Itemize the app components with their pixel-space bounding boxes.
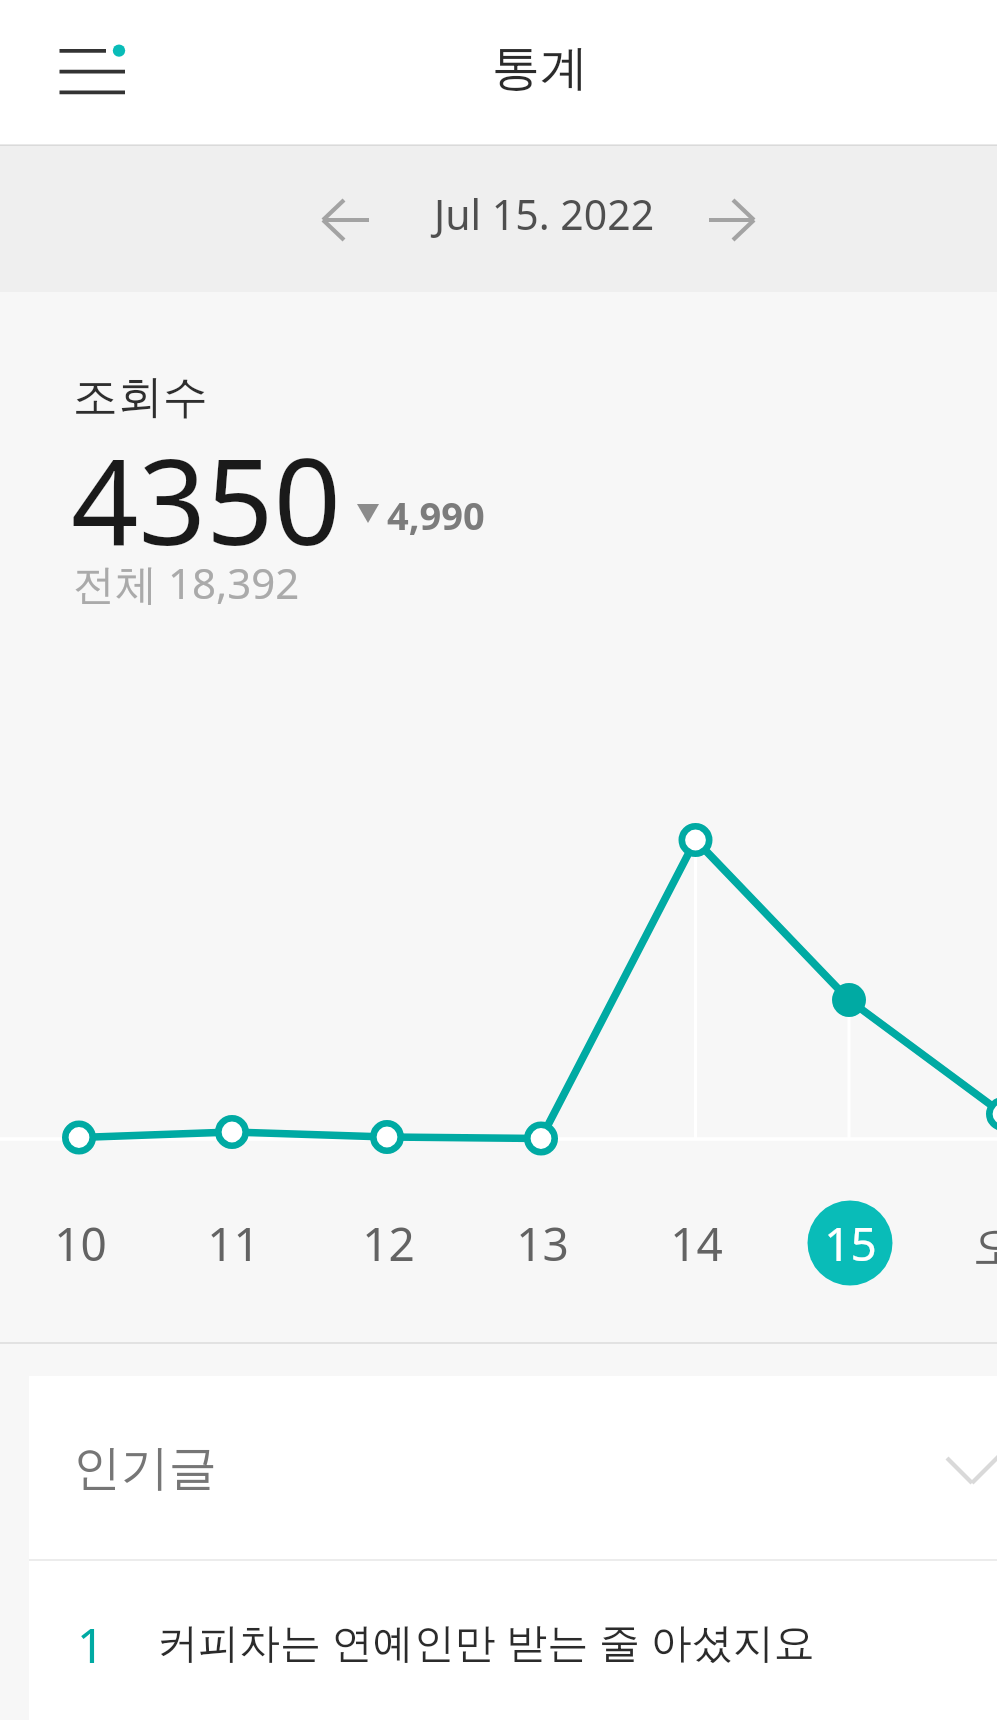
staticText: 4350	[71, 419, 341, 580]
staticText: 인기글	[73, 1438, 217, 1498]
staticText: 14	[670, 1212, 723, 1275]
staticText: 통계	[492, 38, 588, 98]
button[interactable]: 11	[183, 1201, 283, 1287]
button[interactable]: 13	[492, 1201, 592, 1287]
button[interactable]: Menu	[32, 18, 142, 128]
button[interactable]: 14	[646, 1201, 746, 1287]
button[interactable]: Next day	[681, 172, 777, 268]
staticText: 조회수	[73, 369, 208, 426]
staticText: 전체 18,392	[73, 554, 300, 611]
button[interactable]: 10	[30, 1201, 130, 1287]
button[interactable]: Previous day	[295, 172, 391, 268]
staticText: 4,990	[387, 489, 485, 541]
button[interactable]: 12	[338, 1201, 438, 1287]
staticText: 15	[824, 1212, 877, 1275]
staticText: 12	[362, 1212, 415, 1275]
staticText: 커피차는 연예인만 받는 줄 아셨지요	[157, 1613, 815, 1669]
button[interactable]: 15	[800, 1201, 900, 1287]
button[interactable]: 오늘	[960, 1201, 997, 1287]
staticText: 10	[54, 1212, 107, 1275]
staticText: 13	[516, 1212, 569, 1275]
staticText: 오늘	[973, 1218, 997, 1276]
staticText: 11	[207, 1212, 260, 1275]
staticText: 1	[77, 1612, 105, 1677]
button[interactable]: 1	[29, 1561, 997, 1720]
staticText: Jul 15. 2022	[434, 186, 655, 242]
button[interactable]: 인기글	[29, 1376, 997, 1560]
